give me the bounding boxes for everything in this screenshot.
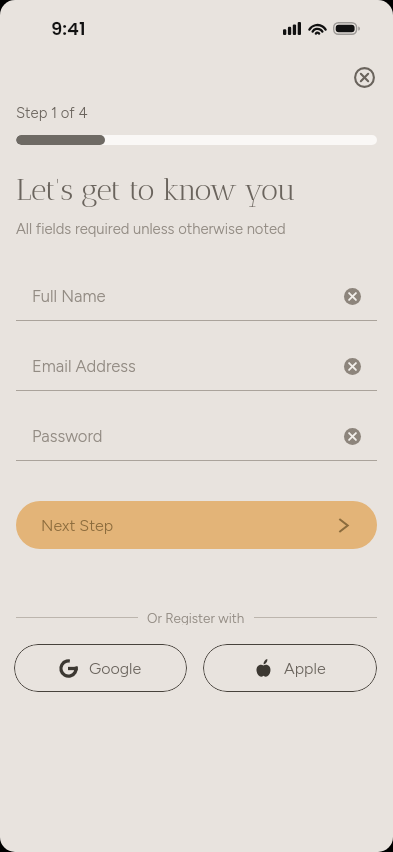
staticText: Or Register with [147, 610, 245, 625]
staticText: Password [32, 426, 344, 446]
button[interactable]: Next Step [16, 501, 377, 549]
staticText: Apple [284, 659, 326, 678]
button[interactable]: Apple [203, 644, 377, 692]
staticText: Next Step [41, 516, 114, 535]
staticText: Step 1 of 4 [16, 104, 88, 122]
staticText: Full Name [32, 286, 344, 306]
button[interactable]: Close [350, 63, 379, 92]
button[interactable]: Google [14, 644, 187, 692]
staticText: 9:41 [51, 16, 86, 41]
staticText: Google [89, 659, 142, 678]
staticText: Let's get to know you [16, 172, 296, 208]
button[interactable]: Full Name [16, 279, 377, 313]
staticText: Email Address [32, 356, 344, 376]
button[interactable]: Password [16, 419, 377, 453]
button[interactable]: Email Address [16, 349, 377, 383]
staticText: All fields required unless otherwise not… [16, 220, 286, 238]
